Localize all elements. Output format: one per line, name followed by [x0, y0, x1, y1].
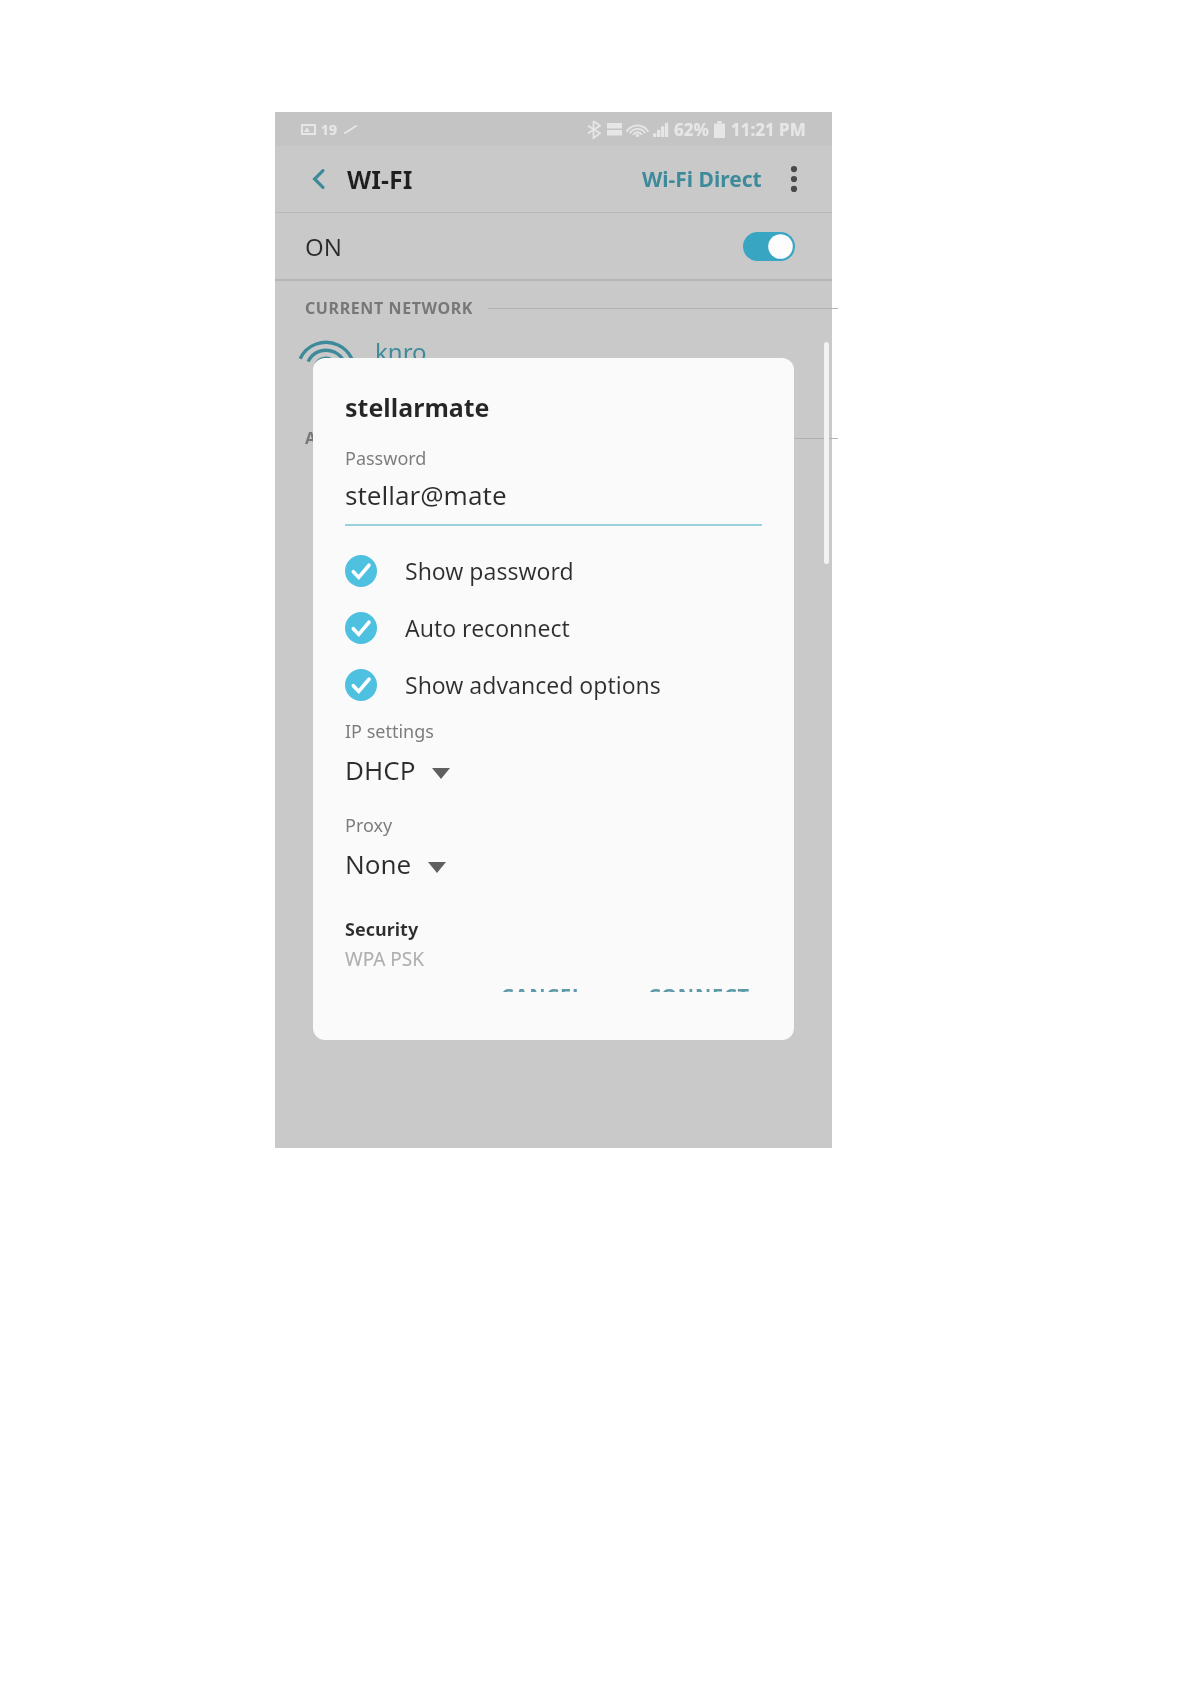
- button[interactable]: More options: [774, 159, 814, 199]
- staticText: CONNECT: [648, 982, 750, 992]
- staticText: CURRENT NETWORK: [305, 297, 474, 319]
- staticText: Proxy: [345, 813, 393, 838]
- staticText: CANCEL: [501, 982, 584, 992]
- button[interactable]: CANCEL: [487, 972, 598, 1002]
- button[interactable]: Show password: [313, 542, 794, 599]
- staticText: stellarmate: [345, 390, 490, 424]
- button[interactable]: None: [313, 842, 794, 885]
- staticText: AVAILABLE NETWORKS: [305, 427, 496, 449]
- staticText: 11:21 PM: [731, 118, 806, 141]
- staticText: ON: [305, 230, 342, 263]
- staticText: Security: [345, 917, 419, 942]
- button[interactable]: DHCP: [313, 748, 794, 791]
- button[interactable]: Back: [297, 157, 341, 201]
- staticText: 62%: [674, 118, 709, 141]
- staticText: DHCP: [345, 752, 416, 787]
- staticText: WPA PSK: [345, 946, 424, 972]
- staticText: WI-FI: [347, 162, 413, 196]
- staticText: Show advanced options: [405, 669, 661, 700]
- button[interactable]: Auto reconnect: [313, 599, 794, 656]
- staticText: 19: [321, 120, 338, 139]
- staticText: knro: [375, 335, 427, 368]
- button[interactable]: Show advanced options: [313, 656, 794, 713]
- button[interactable]: ON: [275, 213, 832, 279]
- staticText: Show password: [405, 555, 574, 586]
- staticText: None: [345, 846, 412, 881]
- button[interactable]: CONNECT: [634, 972, 764, 1002]
- staticText: Auto reconnect: [405, 612, 570, 643]
- staticText: Wi-Fi Direct: [642, 165, 762, 194]
- button[interactable]: Wi-Fi Direct: [636, 157, 768, 202]
- staticText: IP settings: [345, 719, 434, 744]
- staticText: Password: [345, 446, 427, 471]
- staticText: stellar@mate: [345, 477, 507, 512]
